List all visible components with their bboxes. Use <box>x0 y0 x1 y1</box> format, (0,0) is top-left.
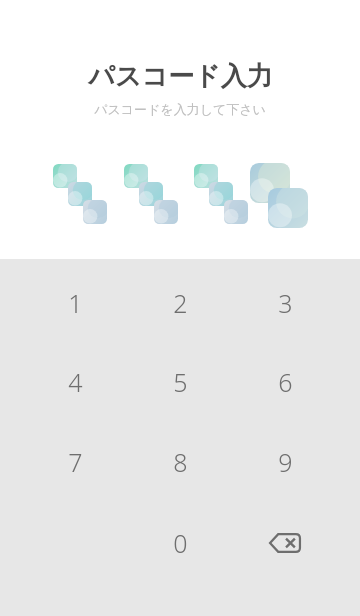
staticText: 5 <box>173 365 188 399</box>
button[interactable]: 7 <box>20 425 130 499</box>
button[interactable]: 5 <box>125 345 235 419</box>
button[interactable]: Delete <box>230 506 340 580</box>
staticText: 0 <box>173 526 188 560</box>
button[interactable]: 9 <box>230 425 340 499</box>
button[interactable]: 8 <box>125 425 235 499</box>
button[interactable]: 4 <box>20 345 130 419</box>
button[interactable]: 3 <box>230 266 340 340</box>
staticText: 3 <box>278 286 293 320</box>
staticText: 8 <box>173 445 188 479</box>
staticText: パスコードを入力して下さい <box>94 101 266 117</box>
staticText: 2 <box>173 286 188 320</box>
button[interactable]: 6 <box>230 345 340 419</box>
staticText: 4 <box>68 365 83 399</box>
staticText: 9 <box>278 445 293 479</box>
staticText: 1 <box>68 286 83 320</box>
button[interactable]: 2 <box>125 266 235 340</box>
button[interactable]: 0 <box>125 506 235 580</box>
button[interactable]: 1 <box>20 266 130 340</box>
staticText: パスコード入力 <box>88 60 273 93</box>
staticText: 7 <box>68 445 83 479</box>
staticText: 6 <box>278 365 293 399</box>
